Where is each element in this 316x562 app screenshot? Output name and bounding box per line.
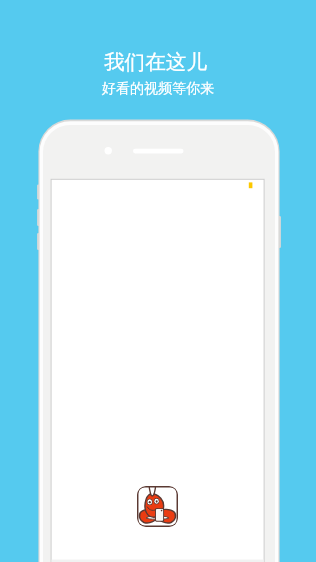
button[interactable]: App logo (137, 486, 178, 527)
staticText: 好看的视频等你来 (102, 80, 214, 98)
staticText: 我们在这儿 (104, 49, 207, 75)
